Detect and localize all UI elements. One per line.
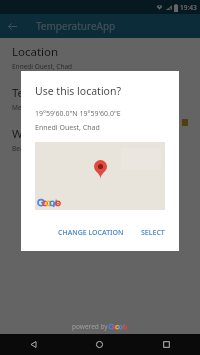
staticText: SELECT [141,228,165,238]
button[interactable]: Map preview [35,142,165,210]
staticText: Ennedi Ouest, Chad [12,62,73,71]
button[interactable]: Recent apps [133,334,200,355]
staticText: TemperatureApp [36,19,116,33]
button[interactable]: SELECT [135,223,171,243]
staticText: CHANGE LOCATION [58,228,124,238]
staticText: Temperature [12,85,82,101]
button[interactable]: Back [0,334,66,355]
staticText: Use this location? [35,84,121,98]
staticText: Wind [12,126,40,142]
staticText: Location [12,44,59,60]
staticText: powered by [72,322,110,331]
staticText: Metric [12,103,32,112]
button[interactable]: Home [66,334,133,355]
staticText: Beaufort [12,144,39,153]
staticText: Ennedi Ouest, Chad [35,123,100,133]
button[interactable]: Navigate up [0,14,24,38]
staticText: 19:43 [180,3,197,12]
staticText: 19°59'60.0"N 19°59'60.0"E [35,109,121,119]
button[interactable]: CHANGE LOCATION [52,223,130,243]
